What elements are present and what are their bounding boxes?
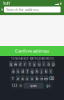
staticText: c [26, 76, 28, 81]
button[interactable]: x [21, 75, 25, 81]
button[interactable]: t [28, 61, 32, 67]
button[interactable]: go [44, 83, 52, 89]
staticText: ▂▃ ▮ [55, 2, 61, 5]
staticText: l [50, 68, 51, 74]
button[interactable]: m [44, 75, 48, 81]
staticText: q [10, 61, 12, 67]
staticText: 123 [12, 84, 18, 87]
staticText: w [14, 61, 17, 67]
staticText: Personalised Text Replacements [10, 57, 53, 60]
button[interactable]: c [25, 75, 29, 81]
button[interactable]: p [51, 61, 55, 67]
button[interactable]: d [21, 68, 25, 74]
staticText: o [47, 61, 49, 67]
button[interactable]: z [16, 75, 20, 81]
staticText: ⌫ [49, 76, 55, 81]
staticText: Search for address [6, 7, 39, 12]
staticText: ⇧ [11, 76, 14, 81]
button[interactable]: space [24, 83, 44, 89]
staticText: space [30, 84, 37, 87]
button[interactable]: ⇧ [10, 75, 15, 81]
staticText: j [41, 68, 42, 74]
staticText: t [29, 61, 30, 67]
button[interactable]: e [18, 61, 22, 67]
staticText: b [36, 76, 38, 81]
button[interactable]: l [49, 68, 53, 74]
staticText: 9:41 [3, 1, 10, 6]
button[interactable]: g [30, 68, 34, 74]
staticText: i [43, 61, 44, 67]
staticText: s [17, 68, 19, 74]
staticText: e [19, 61, 21, 67]
staticText: u [38, 61, 40, 67]
staticText: n [40, 76, 42, 81]
button[interactable]: j [39, 68, 43, 74]
button[interactable]: h [35, 68, 39, 74]
button[interactable]: y [32, 61, 36, 67]
button[interactable]: u [37, 61, 41, 67]
button[interactable]: Close [0, 6, 4, 12]
staticText: r [24, 61, 26, 67]
button[interactable]: 123 [11, 83, 18, 89]
staticText: ☺ [19, 84, 22, 87]
button[interactable]: b [35, 75, 39, 81]
staticText: ✕ [0, 7, 3, 12]
staticText: y [33, 61, 35, 67]
button[interactable]: i [42, 61, 46, 67]
button[interactable]: v [30, 75, 34, 81]
staticText: h [36, 68, 38, 74]
staticText: d [22, 68, 24, 74]
button[interactable]: s [16, 68, 20, 74]
button[interactable]: f [25, 68, 29, 74]
staticText: g [31, 68, 33, 74]
button[interactable]: a [11, 68, 15, 74]
staticText: p [52, 61, 54, 67]
button[interactable]: r [23, 61, 27, 67]
staticText: m [44, 76, 48, 81]
staticText: v [31, 76, 33, 81]
button[interactable]: w [14, 61, 17, 67]
staticText: k [45, 68, 47, 74]
staticText: Confirm address [15, 48, 49, 54]
button[interactable]: ⌫ [49, 75, 54, 81]
button[interactable]: o [46, 61, 50, 67]
staticText: x [22, 76, 24, 81]
staticText: a [12, 68, 14, 74]
staticText: go [46, 84, 50, 87]
staticText: f [27, 68, 28, 74]
button[interactable]: q [9, 61, 13, 67]
button[interactable]: Confirm address [0, 46, 64, 56]
button[interactable]: ☺ [18, 83, 23, 89]
staticText: z [17, 76, 19, 81]
button[interactable]: n [39, 75, 43, 81]
button[interactable]: k [44, 68, 48, 74]
